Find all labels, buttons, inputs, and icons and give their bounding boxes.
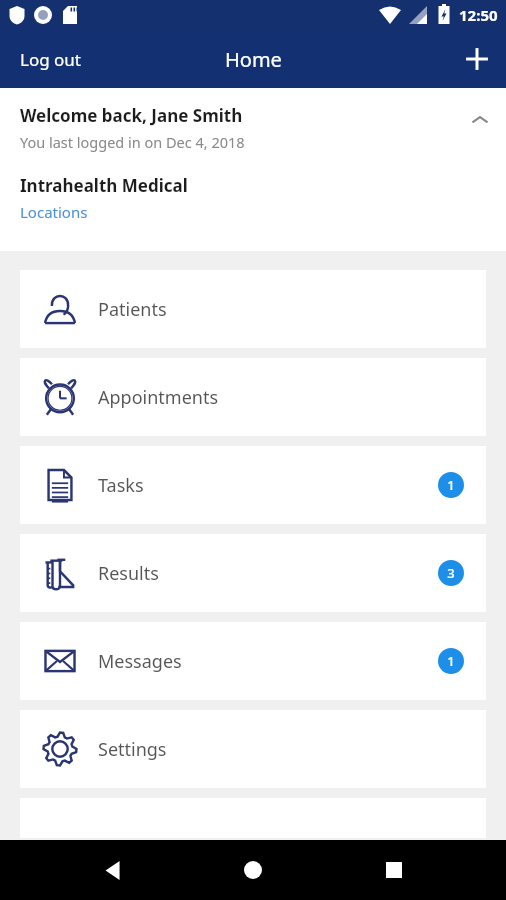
button[interactable]: Log out: [0, 30, 101, 88]
button[interactable]: Appointments: [20, 358, 486, 436]
button[interactable]: Back: [85, 842, 141, 898]
staticText: Intrahealth Medical: [20, 174, 188, 197]
staticText: Patients: [98, 297, 486, 322]
staticText: 1: [447, 652, 455, 670]
staticText: Tasks: [98, 473, 438, 498]
staticText: 1: [447, 476, 455, 494]
staticText: 12:50: [459, 5, 498, 25]
button[interactable]: Patients: [20, 270, 486, 348]
button[interactable]: Collapse: [454, 94, 506, 146]
staticText: 3: [447, 564, 455, 582]
staticText: Results: [98, 561, 438, 586]
button[interactable]: Home: [225, 842, 281, 898]
button[interactable]: Locations: [20, 202, 88, 222]
button[interactable]: Add: [448, 30, 506, 88]
staticText: Messages: [98, 649, 438, 674]
button[interactable]: Tasks: [20, 446, 486, 524]
staticText: Settings: [98, 737, 486, 762]
button[interactable]: Results: [20, 534, 486, 612]
staticText: Log out: [20, 48, 81, 71]
staticText: Welcome back, Jane Smith: [20, 104, 243, 127]
button[interactable]: Recent apps: [366, 842, 422, 898]
staticText: Appointments: [98, 385, 486, 410]
button[interactable]: Settings: [20, 710, 486, 788]
staticText: Locations: [20, 202, 88, 222]
staticText: You last logged in on Dec 4, 2018: [20, 132, 245, 152]
button[interactable]: Messages: [20, 622, 486, 700]
staticText: Home: [225, 46, 282, 73]
